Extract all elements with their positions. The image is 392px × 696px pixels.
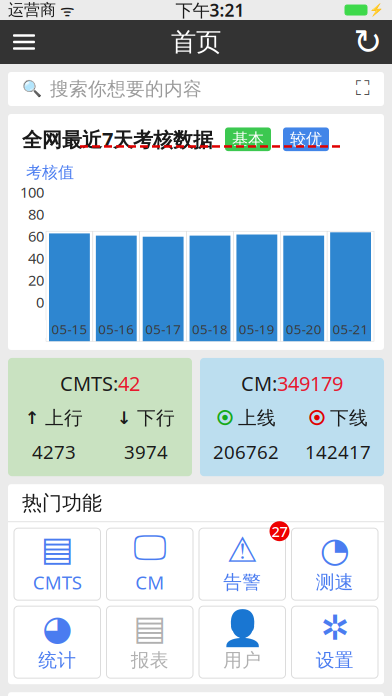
staticText: 热门功能 bbox=[22, 491, 102, 515]
button[interactable]: ◕ bbox=[14, 606, 100, 678]
staticText: ⦿ bbox=[308, 409, 325, 426]
staticText: 较优 bbox=[290, 129, 322, 149]
staticText: 设置 bbox=[316, 649, 354, 672]
staticText: ↑ bbox=[25, 408, 40, 428]
staticText: 05-20 bbox=[286, 320, 322, 338]
staticText: 05-15 bbox=[51, 320, 87, 338]
staticText: 100 bbox=[20, 182, 44, 202]
button[interactable]: ▤ bbox=[106, 606, 193, 678]
staticText: 🖵 bbox=[133, 532, 166, 566]
staticText: 206762 bbox=[213, 439, 279, 464]
button[interactable]: ✲ bbox=[291, 606, 378, 678]
staticText: 60 bbox=[28, 226, 44, 246]
staticText: 05-21 bbox=[333, 320, 369, 338]
staticText: 下行 bbox=[137, 406, 175, 429]
staticText: ⚡ bbox=[369, 3, 384, 17]
staticText: 142417 bbox=[305, 439, 371, 464]
button[interactable]: CMTS: bbox=[8, 358, 192, 476]
staticText: 05-17 bbox=[145, 320, 181, 338]
staticText: 测速 bbox=[316, 571, 354, 594]
staticText: ▤ bbox=[41, 529, 74, 568]
button[interactable]: ▤ bbox=[14, 528, 100, 600]
staticText: 05-18 bbox=[192, 320, 228, 338]
staticText: ⦿ bbox=[216, 409, 233, 426]
staticText: 上行 bbox=[45, 406, 83, 429]
staticText: 告警 bbox=[223, 571, 261, 594]
staticText: 20 bbox=[28, 270, 44, 290]
staticText: 上线 bbox=[238, 406, 276, 429]
button[interactable]: CM: bbox=[200, 358, 384, 476]
staticText: ↓ bbox=[117, 408, 132, 428]
staticText: 40 bbox=[28, 248, 44, 268]
staticText: ⚠ bbox=[227, 530, 258, 569]
staticText: 运营商 bbox=[8, 0, 56, 20]
staticText: 用户 bbox=[223, 649, 261, 672]
staticText: CM: bbox=[241, 370, 277, 396]
staticText: ᯤ bbox=[56, 0, 75, 21]
staticText: ◕ bbox=[42, 608, 72, 647]
staticText: ▤ bbox=[133, 608, 166, 647]
staticText: CM bbox=[135, 570, 164, 595]
staticText: 报表 bbox=[131, 649, 169, 672]
staticText: 考核值 bbox=[26, 163, 74, 182]
staticText: 4273 bbox=[32, 439, 76, 464]
staticText: 27 bbox=[271, 521, 287, 541]
staticText: 05-19 bbox=[239, 320, 275, 338]
staticText: 05-16 bbox=[98, 320, 134, 338]
staticText: 349179 bbox=[277, 370, 343, 396]
button[interactable]: 菜单 bbox=[0, 20, 48, 64]
staticText: 全网最近7天考核数据 bbox=[22, 126, 213, 153]
staticText: 80 bbox=[28, 204, 44, 224]
staticText: CMTS bbox=[33, 570, 82, 595]
staticText: 下线 bbox=[330, 406, 368, 429]
staticText: CMTS: bbox=[60, 370, 118, 396]
button[interactable]: ◔ bbox=[291, 528, 378, 600]
staticText: 搜索你想要的内容 bbox=[50, 77, 202, 100]
staticText: 下午3:21 bbox=[175, 0, 244, 21]
staticText: 42 bbox=[118, 370, 140, 396]
staticText: 首页 bbox=[171, 26, 221, 57]
button[interactable]: 刷新 bbox=[344, 20, 392, 64]
button[interactable]: 🔍 bbox=[8, 72, 384, 106]
staticText: 3974 bbox=[124, 439, 168, 464]
button[interactable]: 👤 bbox=[199, 606, 285, 678]
staticText: 👤 bbox=[221, 608, 264, 647]
staticText: 🔍 bbox=[22, 80, 42, 98]
staticText: ⛶ bbox=[356, 79, 370, 99]
staticText: 0 bbox=[36, 292, 44, 312]
staticText: 统计 bbox=[38, 649, 76, 672]
button[interactable]: 🖵 bbox=[106, 528, 193, 600]
staticText: ◔ bbox=[320, 530, 350, 569]
staticText: ↻ bbox=[353, 22, 382, 62]
staticText: 基本 bbox=[232, 129, 264, 149]
button[interactable]: ⚠ bbox=[199, 528, 285, 600]
staticText: ✲ bbox=[320, 608, 349, 647]
